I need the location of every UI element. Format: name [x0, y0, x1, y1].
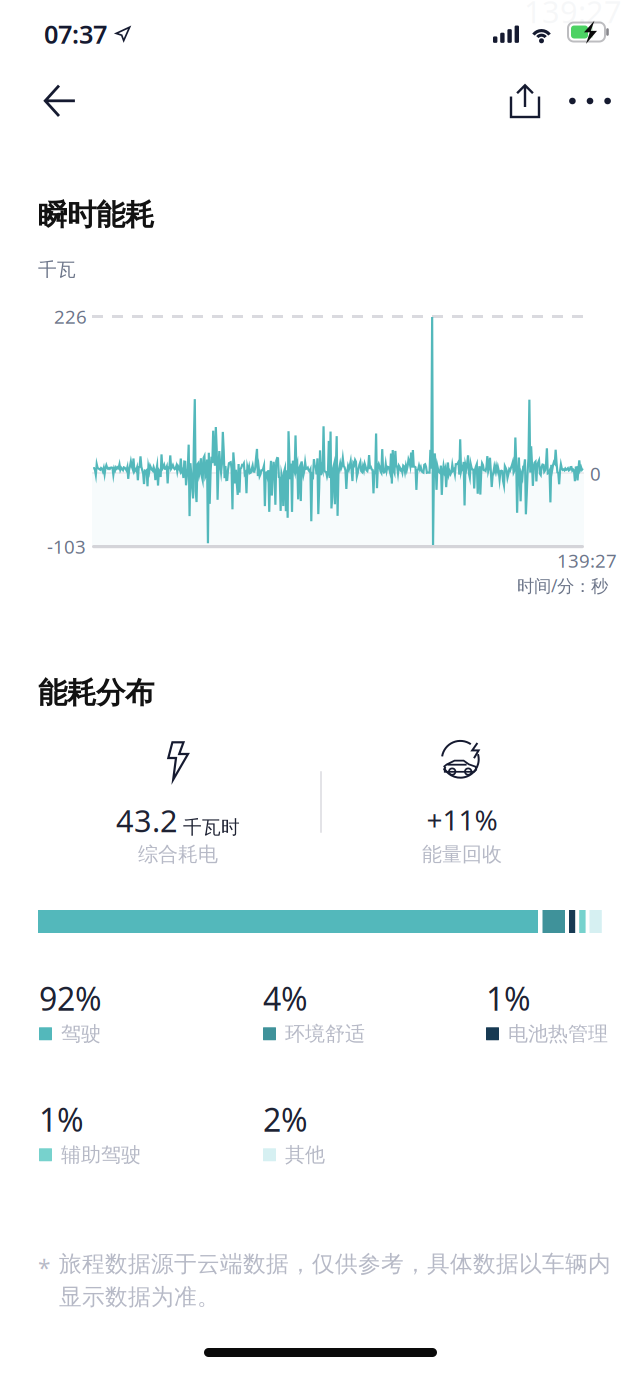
staticText: 226 [54, 304, 87, 329]
staticText: 旅程数据源于云端数据，仅供参考，具体数据以车辆内 [59, 1250, 611, 1278]
staticText: 环境舒适 [285, 1021, 365, 1046]
staticText: -103 [47, 534, 86, 559]
staticText: 139:27 [524, 0, 622, 32]
button[interactable]: Back [29, 73, 91, 129]
button[interactable]: More options [560, 73, 620, 129]
staticText: 1% [486, 977, 531, 1019]
staticText: 4% [263, 977, 308, 1019]
staticText: 2% [263, 1098, 308, 1140]
staticText: 驾驶 [61, 1021, 101, 1046]
staticText: 139:27 [557, 548, 617, 573]
staticText: 1% [39, 1098, 84, 1140]
staticText: 显示数据为准。 [59, 1283, 220, 1311]
staticText: 其他 [285, 1142, 325, 1167]
staticText: 千瓦时 [183, 816, 240, 839]
staticText: 0 [590, 461, 601, 486]
staticText: 92% [39, 977, 102, 1019]
staticText: 07:37 [44, 17, 107, 51]
staticText: 能耗分布 [38, 675, 154, 711]
staticText: 43.2 [116, 800, 178, 841]
staticText: 能量回收 [422, 842, 502, 867]
staticText: * [38, 1253, 50, 1283]
staticText: 千瓦 [38, 258, 76, 281]
staticText: +11% [426, 801, 497, 838]
button[interactable]: Share [495, 73, 555, 129]
staticText: 时间/分：秒 [517, 574, 608, 597]
staticText: 瞬时能耗 [38, 197, 154, 233]
staticText: 综合耗电 [138, 842, 218, 867]
staticText: 辅助驾驶 [61, 1142, 141, 1167]
staticText: 电池热管理 [508, 1021, 608, 1046]
